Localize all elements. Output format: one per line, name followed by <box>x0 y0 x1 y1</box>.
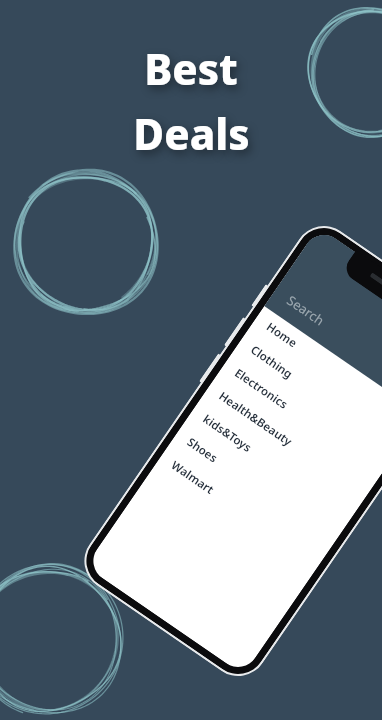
staticText: Search <box>284 291 328 330</box>
staticText: kids&Toys <box>200 411 255 456</box>
button[interactable]: Health&Beauty <box>201 375 375 507</box>
button[interactable]: Best <box>0 40 382 162</box>
button[interactable]: Home <box>248 306 382 438</box>
staticText: Walmart <box>168 457 217 498</box>
staticText: Best <box>144 40 238 97</box>
staticText: Home <box>263 319 300 351</box>
staticText: Clothing <box>247 342 296 382</box>
staticText: Health&Beauty <box>216 388 296 450</box>
staticText: Deals <box>133 105 250 162</box>
button[interactable]: Phone preview of shopping app <box>73 214 382 688</box>
button[interactable]: Electronics <box>217 352 382 484</box>
staticText: Shoes <box>184 434 221 467</box>
staticText: Electronics <box>231 365 291 413</box>
button[interactable]: Clothing <box>232 329 382 461</box>
button[interactable]: Shoes <box>169 421 343 553</box>
button[interactable]: Search <box>264 273 382 415</box>
button[interactable]: kids&Toys <box>185 398 359 530</box>
button[interactable]: Walmart <box>153 444 327 576</box>
